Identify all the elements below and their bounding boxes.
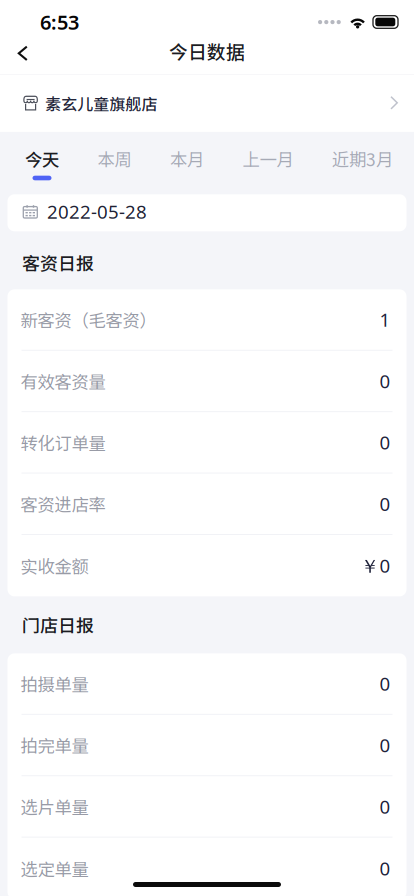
button[interactable]: 今天 bbox=[25, 150, 59, 180]
staticText: 门店日报 bbox=[22, 611, 94, 637]
button[interactable]: 近期3月 bbox=[332, 150, 393, 180]
staticText: 6:53 bbox=[40, 8, 79, 36]
button[interactable]: 素玄儿童旗舰店 bbox=[0, 75, 414, 132]
staticText: 0 bbox=[379, 794, 390, 819]
button[interactable]: 本周 bbox=[97, 150, 131, 180]
button[interactable]: Back bbox=[0, 38, 46, 68]
staticText: 客资日报 bbox=[22, 249, 94, 275]
button[interactable]: 本月 bbox=[170, 150, 204, 180]
staticText: 有效客资量 bbox=[20, 368, 105, 393]
staticText: 新客资（毛客资） bbox=[20, 307, 156, 332]
staticText: 0 bbox=[379, 491, 390, 516]
staticText: 客资进店率 bbox=[20, 491, 105, 516]
staticText: 素玄儿童旗舰店 bbox=[45, 92, 157, 115]
staticText: 拍完单量 bbox=[20, 732, 88, 758]
button[interactable]: 上一月 bbox=[242, 150, 293, 180]
staticText: 今天 bbox=[25, 146, 59, 171]
staticText: 1 bbox=[379, 307, 390, 332]
staticText: 选定单量 bbox=[20, 856, 88, 881]
staticText: 实收金额 bbox=[20, 553, 88, 578]
staticText: 0 bbox=[379, 430, 390, 455]
staticText: 近期3月 bbox=[332, 146, 393, 171]
staticText: 0 bbox=[379, 368, 390, 394]
staticText: 上一月 bbox=[242, 146, 293, 171]
button[interactable]: 2022-05-28 bbox=[7, 194, 406, 231]
staticText: 今日数据 bbox=[169, 37, 245, 64]
staticText: 0 bbox=[379, 671, 390, 696]
staticText: 转化订单量 bbox=[20, 430, 105, 455]
staticText: ￥0 bbox=[360, 553, 390, 578]
staticText: 拍摄单量 bbox=[20, 671, 88, 696]
staticText: 本月 bbox=[170, 146, 204, 171]
staticText: 2022-05-28 bbox=[47, 199, 147, 224]
staticText: 0 bbox=[379, 856, 390, 881]
staticText: 本周 bbox=[97, 146, 131, 171]
staticText: 选片单量 bbox=[20, 794, 88, 819]
staticText: 0 bbox=[379, 732, 390, 758]
